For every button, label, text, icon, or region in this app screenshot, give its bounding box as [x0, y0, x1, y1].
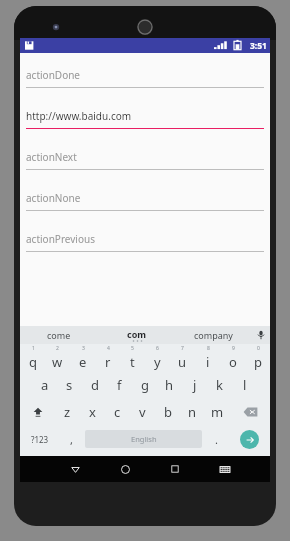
staticText: http://www.baidu.com — [26, 109, 132, 123]
staticText: d — [91, 376, 99, 394]
button[interactable]: actionPrevious — [20, 227, 270, 268]
button[interactable]: Home — [100, 456, 150, 482]
staticText: c — [114, 403, 121, 421]
staticText: z — [64, 403, 71, 421]
button[interactable]: m — [205, 398, 230, 425]
button[interactable]: g — [132, 371, 157, 398]
staticText: actionNext — [26, 150, 77, 164]
staticText: w — [52, 353, 63, 371]
button[interactable]: English — [85, 430, 202, 448]
button[interactable]: 4 — [95, 344, 120, 371]
button[interactable]: 8 — [195, 344, 220, 371]
staticText: 7 — [181, 345, 184, 352]
button[interactable]: Voice input — [252, 326, 270, 344]
staticText: n — [188, 403, 197, 421]
staticText: t — [130, 353, 135, 371]
button[interactable]: 5 — [120, 344, 145, 371]
staticText: g — [141, 376, 149, 394]
button[interactable]: d — [82, 371, 107, 398]
button[interactable]: a — [32, 371, 57, 398]
button[interactable]: v — [130, 398, 155, 425]
staticText: e — [79, 353, 87, 371]
button[interactable]: 6 — [145, 344, 170, 371]
staticText: i — [206, 353, 210, 371]
staticText: 1 — [32, 345, 35, 352]
staticText: b — [164, 403, 172, 421]
staticText: u — [178, 353, 187, 371]
staticText: q — [29, 353, 37, 371]
staticText: . — [215, 432, 218, 447]
button[interactable]: Enter — [228, 425, 270, 453]
button[interactable]: http://www.baidu.com — [20, 104, 270, 145]
button[interactable]: ?123 — [20, 425, 59, 453]
staticText: company — [194, 329, 233, 341]
button[interactable]: Shift — [20, 398, 55, 425]
staticText: 9 — [232, 345, 235, 352]
staticText: 2 — [56, 345, 59, 352]
button[interactable]: Recents — [150, 456, 200, 482]
button[interactable]: actionNone — [20, 186, 270, 227]
button[interactable]: Hide keyboard — [200, 456, 250, 482]
staticText: , — [70, 432, 73, 447]
button[interactable]: Backspace — [230, 398, 270, 425]
button[interactable]: l — [232, 371, 257, 398]
staticText: x — [89, 403, 96, 421]
button[interactable]: 1 — [20, 344, 45, 371]
staticText: come — [47, 329, 71, 341]
staticText: r — [105, 353, 111, 371]
staticText: o — [229, 353, 237, 371]
button[interactable]: actionDone — [20, 63, 270, 104]
staticText: m — [211, 403, 224, 421]
button[interactable]: 0 — [245, 344, 270, 371]
button[interactable]: j — [182, 371, 207, 398]
button[interactable]: s — [57, 371, 82, 398]
button[interactable]: company — [175, 326, 252, 344]
staticText: p — [254, 353, 262, 371]
staticText: 5 — [131, 345, 134, 352]
staticText: actionDone — [26, 68, 80, 82]
staticText: f — [117, 376, 122, 394]
button[interactable]: n — [180, 398, 205, 425]
staticText: y — [154, 353, 161, 371]
staticText: actionNone — [26, 191, 81, 205]
button[interactable]: 2 — [45, 344, 70, 371]
staticText: k — [216, 376, 223, 394]
button[interactable]: 3 — [70, 344, 95, 371]
staticText: 0 — [257, 345, 260, 352]
button[interactable]: x — [80, 398, 105, 425]
staticText: 3:51 — [250, 40, 267, 52]
button[interactable]: f — [107, 371, 132, 398]
staticText: 3 — [82, 345, 85, 352]
button[interactable]: h — [157, 371, 182, 398]
staticText: l — [243, 376, 247, 394]
button[interactable]: z — [55, 398, 80, 425]
staticText: 8 — [207, 345, 210, 352]
staticText: 6 — [156, 345, 159, 352]
button[interactable]: . — [204, 425, 228, 453]
staticText: com — [127, 328, 147, 340]
staticText: actionPrevious — [26, 232, 95, 246]
staticText: j — [193, 376, 197, 394]
staticText: 4 — [107, 345, 110, 352]
staticText: h — [165, 376, 174, 394]
staticText: s — [66, 376, 73, 394]
button[interactable]: come — [20, 326, 98, 344]
button[interactable]: c — [105, 398, 130, 425]
staticText: a — [41, 376, 49, 394]
button[interactable]: com — [98, 326, 175, 344]
button[interactable]: actionNext — [20, 145, 270, 186]
staticText: ?123 — [31, 434, 49, 445]
button[interactable]: b — [155, 398, 180, 425]
button[interactable]: , — [59, 425, 83, 453]
staticText: v — [139, 403, 146, 421]
button[interactable]: 9 — [220, 344, 245, 371]
button[interactable]: Back — [50, 456, 100, 482]
staticText: English — [131, 434, 157, 444]
button[interactable]: 7 — [170, 344, 195, 371]
button[interactable]: k — [207, 371, 232, 398]
